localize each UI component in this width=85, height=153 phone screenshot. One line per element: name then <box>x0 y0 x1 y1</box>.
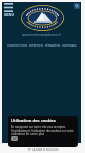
staticText: CONSTRUCTION · ENTRETIEN · RÉPARATION · … <box>7 44 77 48</box>
staticText: www.chantiernavaldecassis.fr <box>22 33 61 37</box>
staticText: Utilisation des cookies <box>11 118 56 124</box>
staticText: MENU <box>4 13 14 17</box>
button[interactable]: Search <box>74 3 80 9</box>
staticText: TP LAUBIER M-BUSSI <box>27 148 59 152</box>
button[interactable]: OK <box>11 136 18 141</box>
staticText: En naviguant sur notre site vous accepte… <box>11 125 75 135</box>
button[interactable]: Menu <box>3 3 14 17</box>
staticText: OK <box>13 137 17 141</box>
